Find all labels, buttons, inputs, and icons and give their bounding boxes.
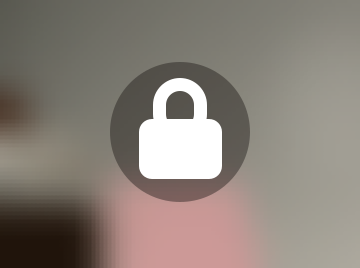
button[interactable]: Unlock [139, 78, 222, 178]
